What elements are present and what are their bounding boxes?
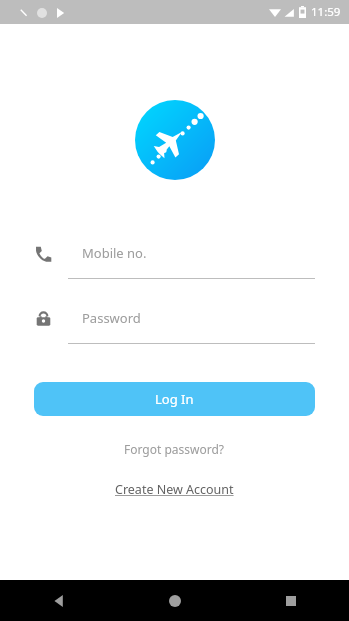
staticText: Mobile no. <box>82 244 147 262</box>
button[interactable]: Create New Account <box>107 478 242 501</box>
other: Password <box>34 309 52 327</box>
staticText: Forgot password? <box>124 441 225 457</box>
button[interactable]: Forgot password? <box>116 438 233 460</box>
staticText: 11:59 <box>311 4 341 20</box>
button[interactable]: Password <box>0 305 349 344</box>
staticText: Password <box>82 309 141 327</box>
staticText: Create New Account <box>115 481 234 498</box>
button[interactable]: Phone <box>0 240 349 279</box>
button[interactable]: Back <box>0 580 117 621</box>
button[interactable]: Log In <box>34 382 315 416</box>
button[interactable]: Home <box>117 580 233 621</box>
button[interactable]: Recent apps <box>233 580 349 621</box>
other: Phone <box>34 244 52 262</box>
staticText: Log In <box>155 390 194 408</box>
